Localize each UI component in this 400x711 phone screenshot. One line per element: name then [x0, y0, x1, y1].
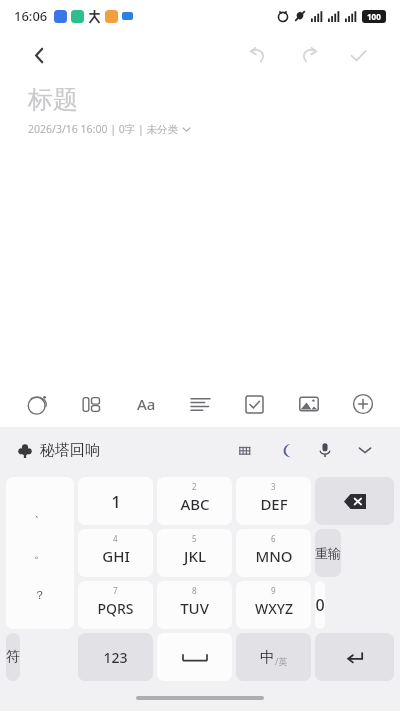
button[interactable]: More — [344, 385, 382, 423]
staticText: 7 — [113, 585, 118, 596]
staticText: 16:06 — [14, 7, 48, 25]
button[interactable]: Hide keyboard — [348, 433, 382, 467]
button[interactable]: 重输 — [315, 529, 341, 577]
button[interactable]: 8 — [157, 581, 232, 629]
staticText: 4 — [113, 533, 118, 544]
staticText: 2 — [192, 481, 197, 492]
staticText: 重输 — [315, 545, 341, 561]
button[interactable]: 5 — [157, 529, 232, 577]
button[interactable]: Save — [338, 35, 378, 75]
button[interactable]: Alignment — [181, 385, 219, 423]
staticText: 标题 — [28, 84, 78, 115]
staticText: 3 — [271, 481, 276, 492]
staticText: 、 — [34, 504, 46, 519]
staticText: TUV — [180, 598, 209, 618]
staticText: GHI — [102, 546, 130, 566]
button[interactable]: Switch Chinese English — [236, 633, 311, 681]
button[interactable]: Redo — [288, 35, 328, 75]
button[interactable]: Backspace — [315, 477, 394, 525]
staticText: 。 — [34, 546, 46, 561]
button[interactable]: 2 — [157, 477, 232, 525]
button[interactable]: Enter — [315, 633, 394, 681]
button[interactable]: 4 — [78, 529, 153, 577]
staticText: ？ — [34, 587, 46, 602]
staticText: Aa — [137, 394, 156, 414]
staticText: 9 — [271, 585, 276, 596]
button[interactable]: Templates — [72, 385, 110, 423]
staticText: ABC — [180, 494, 210, 514]
staticText: 6 — [271, 533, 276, 544]
staticText: 123 — [103, 648, 128, 667]
button[interactable]: 123 — [78, 633, 153, 681]
button[interactable]: 6 — [236, 529, 311, 577]
staticText: 8 — [192, 585, 197, 596]
button[interactable]: Keyboard layout — [228, 433, 262, 467]
staticText: DEF — [260, 494, 288, 514]
button[interactable]: 7 — [78, 581, 153, 629]
staticText: 1 — [111, 490, 121, 513]
staticText: 秘塔回响 — [40, 441, 100, 460]
button[interactable]: Space — [157, 633, 232, 681]
button[interactable]: Text format — [127, 385, 165, 423]
staticText: 中 — [260, 648, 275, 667]
button[interactable]: 1 — [78, 477, 153, 525]
staticText: PQRS — [97, 599, 134, 618]
staticText: /英 — [275, 655, 288, 667]
button[interactable]: Back — [22, 38, 56, 72]
button[interactable]: Night mode — [268, 433, 302, 467]
button[interactable]: 3 — [236, 477, 311, 525]
button[interactable]: Punctuation — [6, 477, 74, 629]
button[interactable]: 符 — [6, 633, 20, 681]
staticText: 0 — [315, 594, 325, 616]
staticText: 100 — [367, 11, 381, 22]
button[interactable]: Checklist — [235, 385, 273, 423]
staticText: 5 — [192, 533, 197, 544]
button[interactable]: 9 — [236, 581, 311, 629]
staticText: MNO — [255, 546, 293, 566]
button[interactable]: Undo — [238, 35, 278, 75]
button[interactable]: 0 — [315, 581, 325, 629]
button[interactable]: AI assistant — [18, 385, 56, 423]
staticText: WXYZ — [255, 599, 293, 618]
button[interactable]: 秘塔回响 — [18, 441, 100, 460]
button[interactable]: Voice input — [308, 433, 342, 467]
staticText: 2026/3/16 16:00 | 0字 | 未分类 — [28, 122, 178, 136]
staticText: JKL — [184, 546, 206, 566]
button[interactable]: Insert image — [290, 385, 328, 423]
staticText: 符 — [6, 648, 20, 666]
